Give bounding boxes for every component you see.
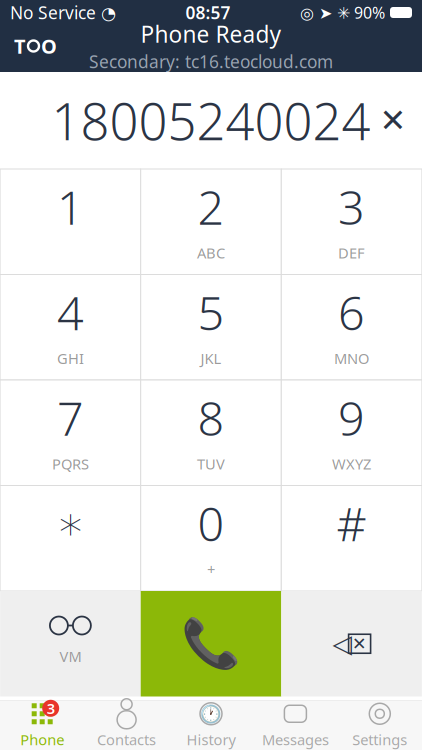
button[interactable]: ∗ <box>0 485 141 591</box>
staticText: + <box>207 559 215 579</box>
button[interactable]: 7 <box>0 380 141 485</box>
button[interactable]: 1 <box>0 169 141 274</box>
button[interactable]: Voicemail <box>0 591 141 696</box>
staticText: 4 <box>57 281 84 343</box>
staticText: 3 <box>47 698 55 718</box>
staticText: 📞 <box>181 616 241 671</box>
button[interactable]: Messages <box>253 701 338 750</box>
staticText: 0 <box>197 492 224 554</box>
staticText: 1 <box>57 176 84 238</box>
staticText: ∗ <box>56 497 85 550</box>
staticText: 08:57 <box>185 1 230 24</box>
button[interactable]: 🕐 <box>169 701 253 750</box>
staticText: 3 <box>338 176 365 238</box>
staticText: 2 <box>197 176 224 238</box>
staticText: WXYZ <box>332 454 371 473</box>
staticText: # <box>337 492 367 554</box>
button[interactable]: 5 <box>141 274 281 380</box>
staticText: 🕐 <box>200 704 222 724</box>
button[interactable]: Settings <box>338 701 422 750</box>
staticText: No Service ◔ <box>10 1 116 24</box>
staticText: History <box>186 730 235 749</box>
staticText: Phone Ready <box>140 19 281 49</box>
button[interactable]: Contacts <box>84 701 169 750</box>
button[interactable]: Delete <box>281 591 422 696</box>
staticText: ◁ <box>333 629 352 658</box>
staticText: Contacts <box>97 730 156 749</box>
staticText: 6 <box>338 281 365 343</box>
button[interactable]: 9 <box>281 380 422 485</box>
staticText: Messages <box>262 730 329 749</box>
staticText: DEF <box>338 243 365 262</box>
staticText: TUV <box>197 454 225 473</box>
staticText: ◎ ➤ ✳ 90% <box>300 2 385 23</box>
staticText: ✕ <box>379 102 406 139</box>
staticText: Secondary: tc16.teocloud.com <box>89 50 333 73</box>
button[interactable]: # <box>281 485 422 591</box>
staticText: O <box>41 33 57 59</box>
staticText: 8 <box>197 387 224 449</box>
button[interactable]: 4 <box>0 274 141 380</box>
staticText: MNO <box>334 348 369 368</box>
staticText: Phone <box>20 730 64 749</box>
staticText: 9 <box>338 387 365 449</box>
button[interactable]: 0 <box>141 485 281 591</box>
staticText: 18005240024 <box>51 87 370 154</box>
staticText: T <box>14 33 26 59</box>
staticText: GHI <box>57 348 84 368</box>
staticText: JKL <box>200 348 221 368</box>
staticText: ✕ <box>352 634 367 654</box>
button[interactable]: Clear <box>364 91 422 149</box>
staticText: PQRS <box>52 454 89 473</box>
button[interactable]: 2 <box>141 169 281 274</box>
staticText: Settings <box>352 730 407 749</box>
staticText: 7 <box>57 387 84 449</box>
button[interactable]: 8 <box>141 380 281 485</box>
staticText: 5 <box>197 281 224 343</box>
button[interactable]: Call <box>141 591 281 696</box>
button[interactable]: 3 <box>0 701 84 750</box>
staticText: ABC <box>197 243 225 262</box>
button[interactable]: 6 <box>281 274 422 380</box>
button[interactable]: 3 <box>281 169 422 274</box>
staticText: VM <box>59 646 81 666</box>
